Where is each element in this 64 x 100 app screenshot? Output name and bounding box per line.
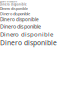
staticText: Dinero disponible: [0, 0, 17, 3]
staticText: Dinero disponible: [0, 3, 27, 6]
staticText: Dinero disponible: [0, 6, 28, 11]
staticText: Dinero disponible: [0, 16, 39, 23]
staticText: Dinero disponible: [0, 38, 57, 47]
staticText: Dinero disponible: [0, 11, 30, 16]
staticText: Dinero disponible: [0, 30, 53, 38]
staticText: Dinero disponible: [0, 23, 41, 30]
